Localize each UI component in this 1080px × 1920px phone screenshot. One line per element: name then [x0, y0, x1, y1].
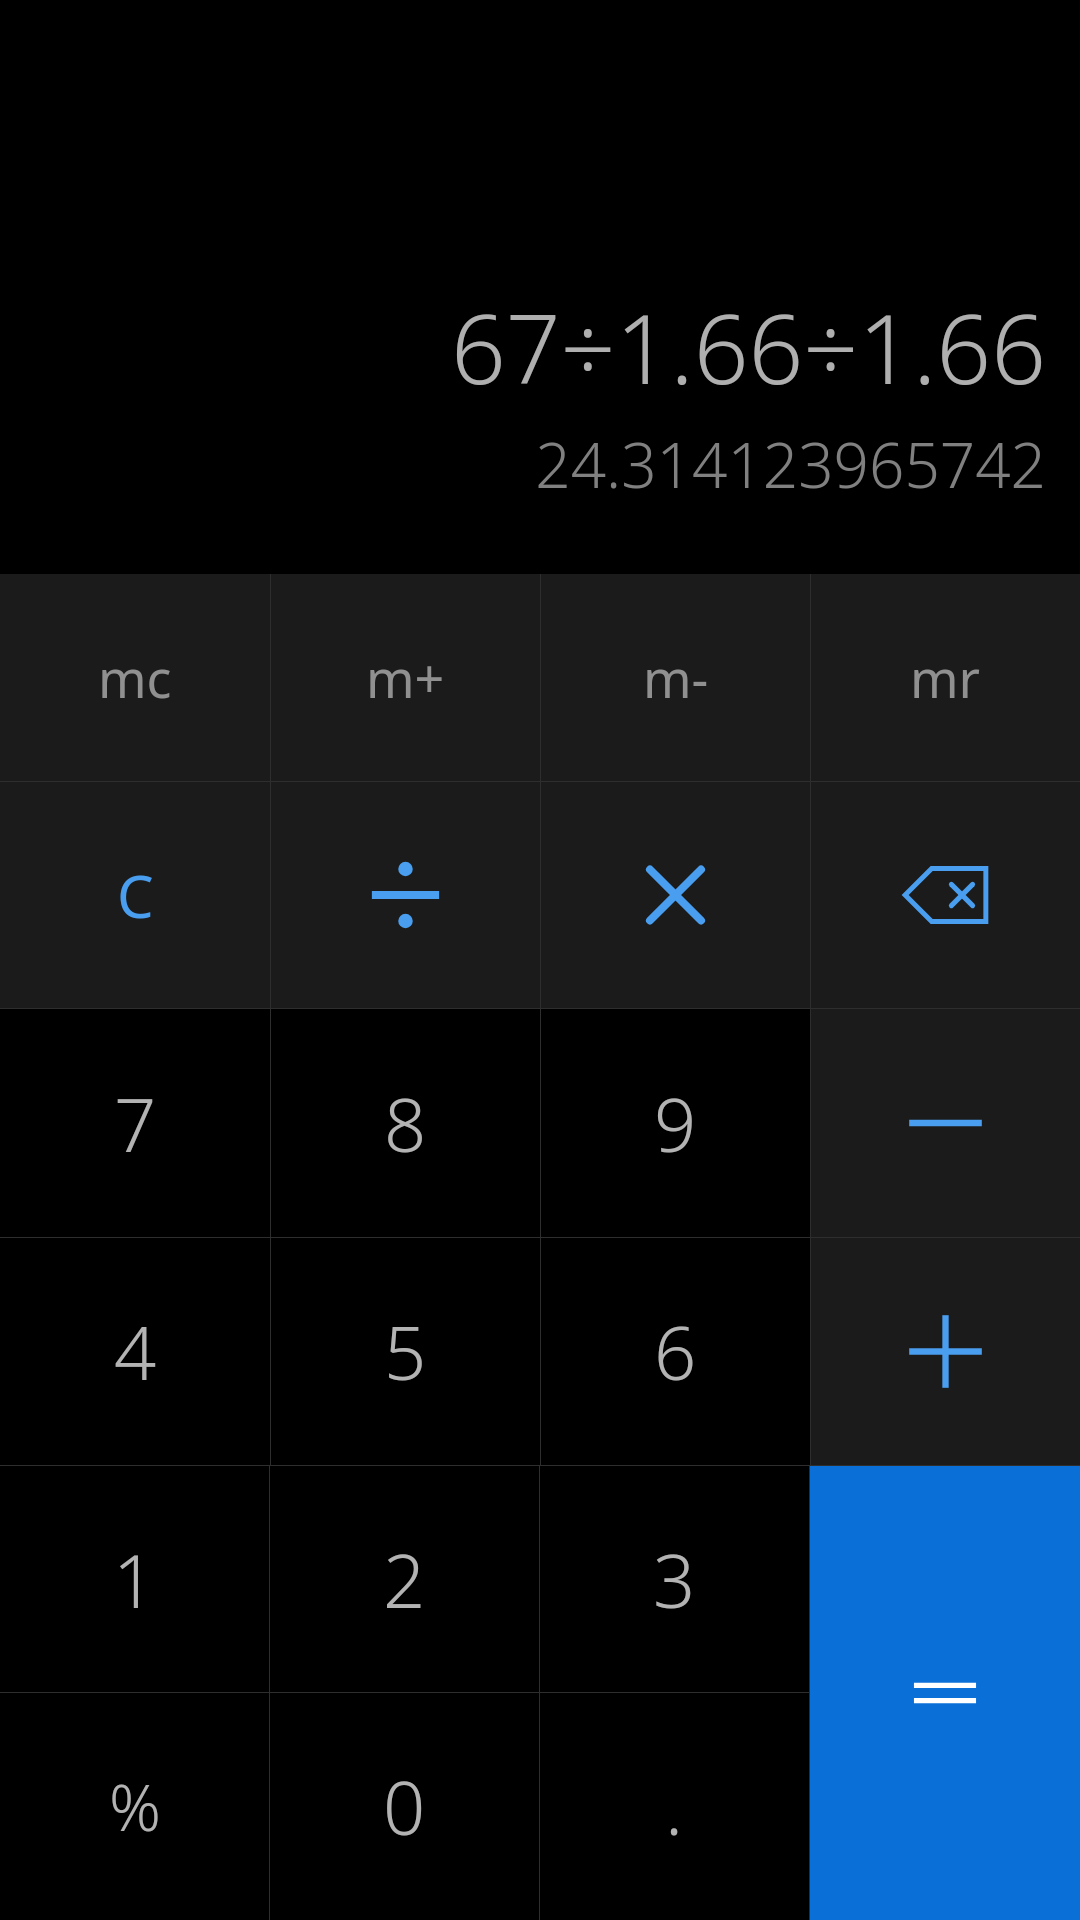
staticText: 7: [114, 1073, 157, 1174]
button[interactable]: Multiply: [541, 782, 810, 1008]
staticText: m+: [366, 642, 445, 713]
button[interactable]: Divide: [271, 782, 540, 1008]
staticText: 24.314123965742: [28, 422, 1046, 506]
button[interactable]: 9: [541, 1009, 810, 1237]
button[interactable]: 0: [270, 1693, 539, 1920]
staticText: mr: [910, 642, 981, 713]
staticText: C: [117, 856, 154, 935]
staticText: 0: [383, 1756, 426, 1857]
button[interactable]: .: [540, 1693, 809, 1920]
staticText: 8: [384, 1073, 427, 1174]
button[interactable]: 7: [0, 1009, 270, 1237]
staticText: 1: [113, 1529, 156, 1630]
staticText: mc: [98, 642, 172, 713]
staticText: 2: [383, 1529, 426, 1630]
staticText: 6: [654, 1301, 697, 1402]
button[interactable]: 3: [540, 1466, 809, 1692]
staticText: m-: [643, 642, 709, 713]
button[interactable]: m+: [271, 574, 540, 781]
button[interactable]: %: [0, 1693, 269, 1920]
staticText: .: [665, 1756, 684, 1857]
button[interactable]: Minus: [811, 1009, 1080, 1237]
staticText: 4: [114, 1301, 157, 1402]
staticText: 67÷1.66÷1.66: [28, 281, 1046, 412]
button[interactable]: 2: [270, 1466, 539, 1692]
button[interactable]: Plus: [811, 1238, 1080, 1465]
staticText: 9: [654, 1073, 697, 1174]
button[interactable]: 1: [0, 1466, 269, 1692]
button[interactable]: m-: [541, 574, 810, 781]
button[interactable]: 4: [0, 1238, 270, 1465]
staticText: %: [109, 1763, 161, 1850]
button[interactable]: Backspace: [811, 782, 1080, 1008]
button[interactable]: 5: [271, 1238, 540, 1465]
button[interactable]: C: [0, 782, 270, 1008]
button[interactable]: mr: [811, 574, 1080, 781]
button[interactable]: mc: [0, 574, 270, 781]
staticText: 3: [653, 1529, 696, 1630]
button[interactable]: 8: [271, 1009, 540, 1237]
button[interactable]: 6: [541, 1238, 810, 1465]
button[interactable]: Equals: [810, 1466, 1080, 1920]
staticText: 5: [384, 1301, 427, 1402]
